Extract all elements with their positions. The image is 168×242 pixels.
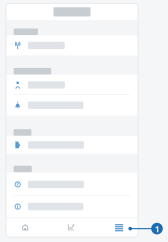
button[interactable] [6, 95, 138, 116]
button[interactable]: ? [6, 173, 138, 196]
button[interactable]: Reports [50, 217, 94, 237]
staticText: ? [16, 181, 19, 188]
staticText: 1 [154, 222, 159, 235]
button[interactable]: More [94, 217, 138, 237]
button[interactable] [6, 35, 138, 55]
staticText: i [17, 203, 19, 210]
button[interactable]: Home [6, 217, 50, 237]
button[interactable] [6, 75, 138, 95]
button[interactable]: i [6, 196, 138, 217]
button[interactable] [6, 136, 138, 154]
